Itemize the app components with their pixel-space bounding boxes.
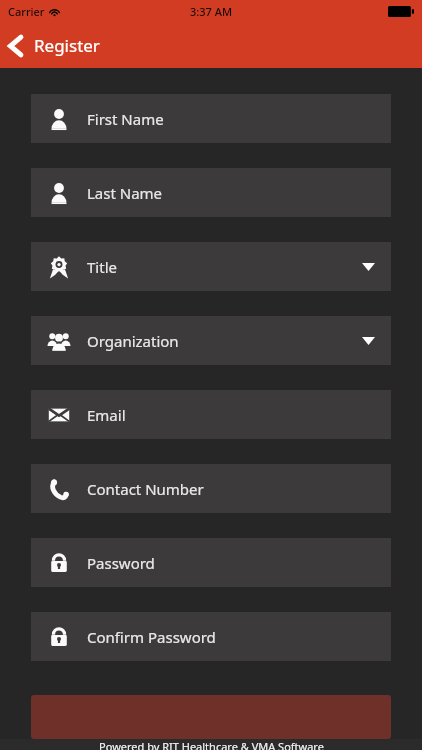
button[interactable]: Contact Number xyxy=(31,464,391,513)
staticText: Last Name xyxy=(87,183,391,203)
button[interactable]: Back xyxy=(0,28,110,63)
staticText: Register xyxy=(34,34,100,57)
staticText: 3:37 AM xyxy=(190,4,233,19)
button[interactable]: Organization xyxy=(31,316,391,365)
button[interactable]: Last Name xyxy=(31,168,391,217)
button[interactable]: Title xyxy=(31,242,391,291)
button[interactable]: Password xyxy=(31,538,391,587)
staticText: Confirm Password xyxy=(87,627,391,647)
staticText: Organization xyxy=(87,331,362,351)
staticText: Email xyxy=(87,405,391,425)
button[interactable]: Confirm Password xyxy=(31,612,391,661)
other: Back xyxy=(7,35,24,57)
staticText: Powered by RIT Healthcare & VMA Software xyxy=(99,739,324,750)
staticText: Title xyxy=(87,257,362,277)
staticText: First Name xyxy=(87,109,391,129)
button[interactable]: First Name xyxy=(31,94,391,143)
button[interactable]: Email xyxy=(31,390,391,439)
staticText: Password xyxy=(87,553,391,573)
staticText: Carrier xyxy=(8,4,45,19)
staticText: Contact Number xyxy=(87,479,391,499)
